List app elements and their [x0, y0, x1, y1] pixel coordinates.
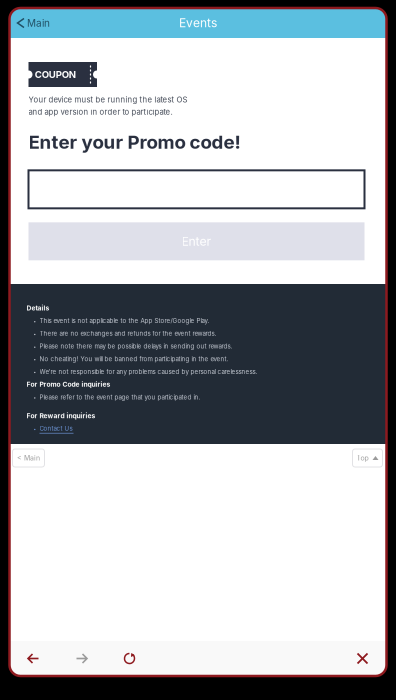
staticText: •	[33, 395, 36, 400]
staticText: We're not responsible for any problems c…	[39, 368, 257, 375]
staticText: No cheating! You will be banned from par…	[39, 355, 228, 363]
staticText: COUPON	[35, 69, 76, 80]
button[interactable]: Back	[9, 640, 57, 676]
staticText: < Main	[17, 454, 40, 462]
staticText: •	[33, 357, 36, 362]
staticText: This event is not applicable to the App …	[39, 317, 209, 324]
button[interactable]: < Main	[12, 449, 44, 467]
staticText: Enter	[181, 234, 211, 249]
staticText: Top	[356, 454, 368, 462]
button[interactable]: Top	[352, 449, 382, 467]
button[interactable]: Reload	[105, 640, 153, 676]
staticText: and app version in order to participate.	[28, 107, 172, 117]
staticText: Please note there may be possible delays…	[39, 342, 232, 350]
staticText: •	[33, 331, 36, 337]
staticText: For Reward inquiries	[26, 412, 95, 420]
staticText: •	[33, 319, 36, 324]
button[interactable]: Main	[9, 8, 58, 38]
staticText: Enter your Promo code!	[28, 131, 240, 153]
staticText: For Promo Code inquiries	[26, 380, 110, 388]
button[interactable]: Forward	[57, 640, 105, 676]
button[interactable]: Close	[338, 640, 386, 676]
staticText: •	[33, 369, 36, 375]
staticText: Please refer to the event page that you …	[39, 393, 200, 401]
staticText: There are no exchanges and refunds for t…	[39, 330, 216, 337]
staticText: Details	[26, 304, 49, 312]
staticText: Contact Us	[39, 425, 72, 432]
staticText: Your device must be running the latest O…	[28, 95, 187, 104]
staticText: •	[33, 426, 36, 432]
button[interactable]: •	[26, 420, 370, 433]
staticText: Main	[27, 17, 50, 29]
staticText: Events	[179, 16, 217, 30]
staticText: •	[33, 344, 36, 349]
